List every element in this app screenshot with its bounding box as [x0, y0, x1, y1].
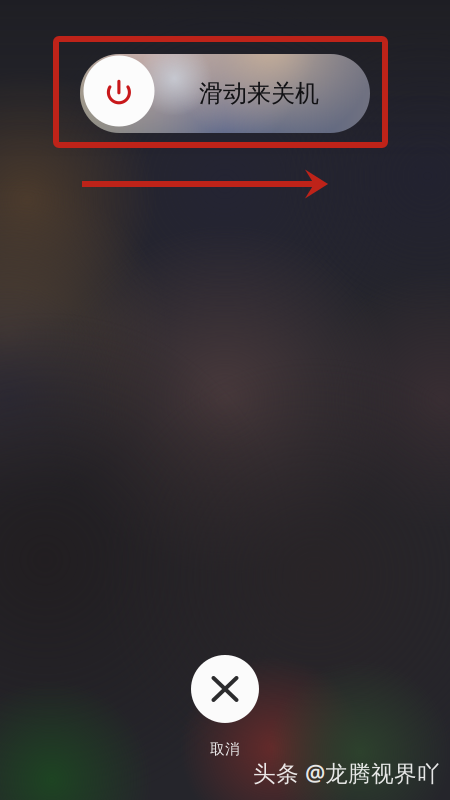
staticText: 取消	[210, 740, 240, 758]
staticText: 滑动来关机	[199, 79, 319, 108]
staticText: 头条 @龙腾视界吖	[253, 758, 440, 788]
button[interactable]: 取消	[191, 655, 259, 758]
